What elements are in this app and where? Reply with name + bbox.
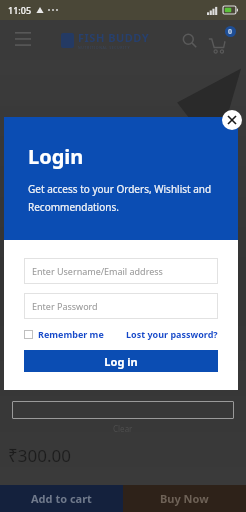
button[interactable]: Buy Now [123,485,246,512]
staticText: FISH BUDDY [78,30,150,45]
staticText: Buy Now [160,491,209,506]
button[interactable]: Menu [10,27,36,53]
staticText: Enter Password [32,300,98,312]
button[interactable]: Enter Username/Email address [32,258,210,284]
button[interactable]: Enter Password [32,293,210,319]
button[interactable]: Add to cart [0,485,123,512]
button[interactable]: Cart [208,26,236,54]
button[interactable]: Remember me [24,328,104,340]
staticText: Add to cart [31,491,92,506]
staticText: Log in [104,354,138,369]
staticText: NUTRITIONAL SECURITY [78,45,130,50]
staticText: Enter Username/Email address [32,265,163,277]
button[interactable]: Log in [24,350,218,372]
staticText: 11:05 [8,4,32,16]
button[interactable]: Search [176,27,202,53]
button[interactable]: Clear [113,423,133,434]
staticText: Remember me [38,328,104,340]
staticText: 0 [228,27,233,37]
button[interactable]: Lost your password? [126,328,218,340]
button[interactable] [12,401,234,419]
staticText: Get access to your Orders, Wishlist and … [28,182,218,214]
staticText: Login [28,143,84,170]
button[interactable]: Close [222,110,242,130]
staticText: ₹300.00 [8,444,71,467]
